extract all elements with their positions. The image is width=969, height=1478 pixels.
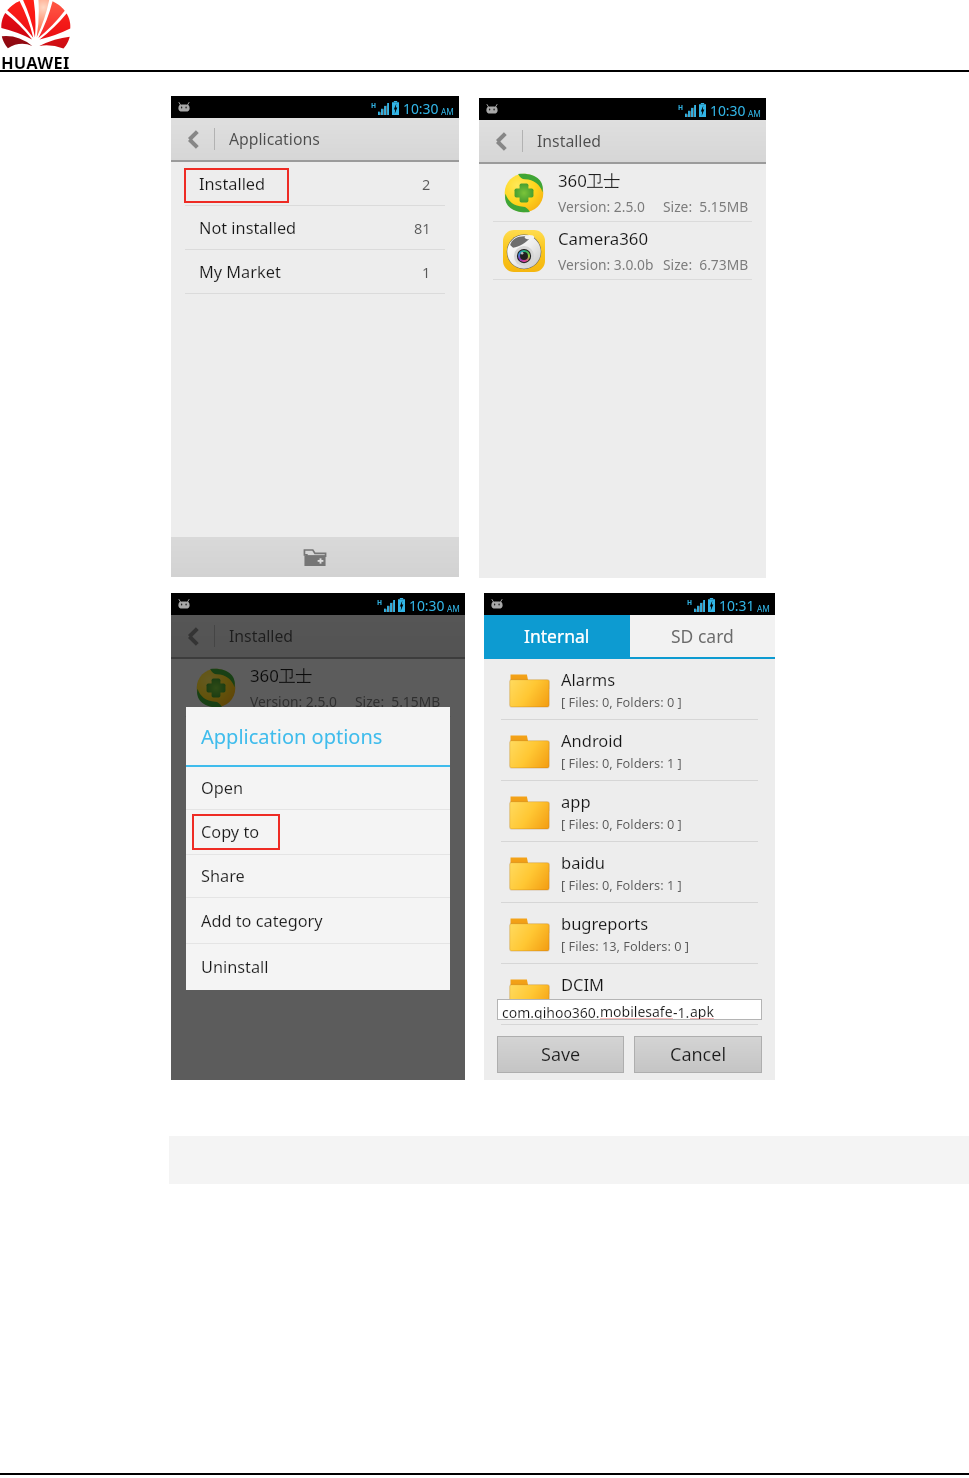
- staticText: Application options: [201, 723, 383, 750]
- staticText: H: [377, 598, 383, 607]
- staticText: Save: [541, 1042, 581, 1067]
- button[interactable]: Share: [186, 855, 450, 897]
- staticText: [ Files: 0, Folders: 1 ]: [561, 876, 682, 893]
- staticText: Cancel: [670, 1042, 727, 1067]
- button[interactable]: Back: [171, 118, 214, 160]
- button[interactable]: Copy to: [186, 810, 450, 854]
- button[interactable]: Save: [497, 1036, 624, 1073]
- button[interactable]: bugreports: [484, 903, 775, 963]
- staticText: [ Files: 0, Folders: 0 ]: [561, 815, 682, 832]
- staticText: SD card: [671, 624, 734, 648]
- staticText: 360卫士: [250, 664, 313, 687]
- staticText: apk: [690, 1002, 714, 1020]
- staticText: AM: [447, 603, 460, 614]
- staticText: AM: [441, 106, 454, 117]
- button[interactable]: Uninstall: [186, 944, 450, 990]
- staticText: Copy to: [201, 821, 260, 843]
- button[interactable]: SD card: [630, 615, 775, 657]
- staticText: -1.: [673, 1003, 690, 1020]
- staticText: 1: [422, 262, 431, 282]
- staticText: My Market: [199, 261, 281, 283]
- staticText: 2: [422, 174, 431, 194]
- staticText: mobilesafe: [600, 1002, 673, 1020]
- staticText: AM: [748, 108, 761, 119]
- button[interactable]: app: [484, 781, 775, 841]
- staticText: H: [678, 103, 684, 112]
- button[interactable]: Back: [171, 615, 214, 657]
- button[interactable]: baidu: [484, 842, 775, 902]
- staticText: H: [371, 101, 377, 110]
- button[interactable]: com.qihoo360.: [497, 999, 762, 1020]
- button[interactable]: Android: [484, 720, 775, 780]
- staticText: baidu: [561, 851, 606, 873]
- button[interactable]: Camera360: [479, 222, 766, 279]
- button[interactable]: Cancel: [634, 1036, 762, 1073]
- staticText: HUAWEI: [1, 51, 70, 73]
- staticText: bugreports: [561, 912, 649, 934]
- staticText: Installed: [229, 625, 294, 647]
- staticText: Add to category: [201, 910, 323, 932]
- button[interactable]: New folder: [298, 540, 332, 574]
- staticText: Size: 5.15MB: [355, 692, 441, 711]
- staticText: app: [561, 790, 591, 812]
- staticText: Internal: [524, 624, 590, 648]
- staticText: [ Files: 13, Folders: 0 ]: [561, 937, 690, 954]
- staticText: DCIM: [561, 973, 605, 995]
- staticText: [ Files: 0, Folders: 1 ]: [561, 754, 682, 771]
- staticText: Version: 2.5.0: [558, 197, 645, 216]
- staticText: Android: [561, 729, 623, 751]
- staticText: H: [687, 598, 693, 607]
- staticText: [ Files: 0, Folders: 0 ]: [561, 998, 682, 1015]
- staticText: Share: [201, 865, 245, 887]
- button[interactable]: Not installed: [171, 206, 459, 249]
- staticText: Installed: [537, 130, 602, 152]
- staticText: Not installed: [199, 217, 297, 239]
- staticText: Uninstall: [201, 956, 269, 978]
- staticText: 360卫士: [558, 169, 621, 192]
- button[interactable]: Internal: [484, 615, 630, 657]
- staticText: Version: 3.0.0be: [558, 255, 653, 274]
- staticText: Camera360: [558, 227, 649, 250]
- staticText: Version: 2.5.0: [250, 692, 337, 711]
- button[interactable]: Open: [186, 767, 450, 809]
- staticText: [ Files: 0, Folders: 0 ]: [561, 693, 682, 710]
- staticText: Size: 5.15MB: [663, 197, 749, 216]
- staticText: 10:30: [710, 101, 746, 120]
- staticText: Alarms: [561, 668, 616, 690]
- staticText: 10:31: [719, 596, 755, 615]
- button[interactable]: Back: [479, 120, 522, 162]
- staticText: AM: [757, 603, 770, 614]
- staticText: 81: [414, 218, 431, 238]
- staticText: 10:30: [409, 596, 445, 615]
- staticText: Size: 6.73MB: [663, 255, 749, 274]
- button[interactable]: Installed: [171, 162, 459, 205]
- staticText: Open: [201, 777, 244, 799]
- button[interactable]: My Market: [171, 250, 459, 293]
- button[interactable]: DCIM: [484, 964, 775, 1024]
- staticText: Installed: [199, 173, 266, 195]
- staticText: Applications: [229, 128, 320, 150]
- staticText: 10:30: [403, 99, 439, 118]
- button[interactable]: 360卫士: [171, 659, 465, 716]
- staticText: com.qihoo360.: [502, 1003, 600, 1020]
- button[interactable]: 360卫士: [479, 164, 766, 221]
- button[interactable]: Add to category: [186, 898, 450, 943]
- button[interactable]: Alarms: [484, 659, 775, 719]
